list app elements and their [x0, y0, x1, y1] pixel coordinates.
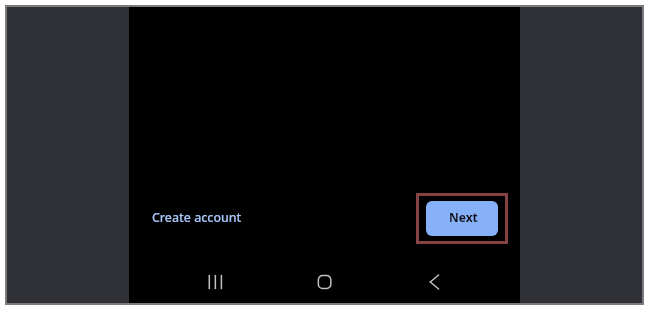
staticText: Next — [449, 209, 478, 225]
staticText: Create account — [152, 209, 242, 226]
button[interactable]: Create account — [144, 201, 250, 234]
button[interactable]: Next — [426, 201, 498, 236]
button[interactable]: Back — [412, 259, 456, 303]
button[interactable]: Home — [303, 259, 347, 303]
button[interactable]: Recent apps — [193, 259, 237, 303]
